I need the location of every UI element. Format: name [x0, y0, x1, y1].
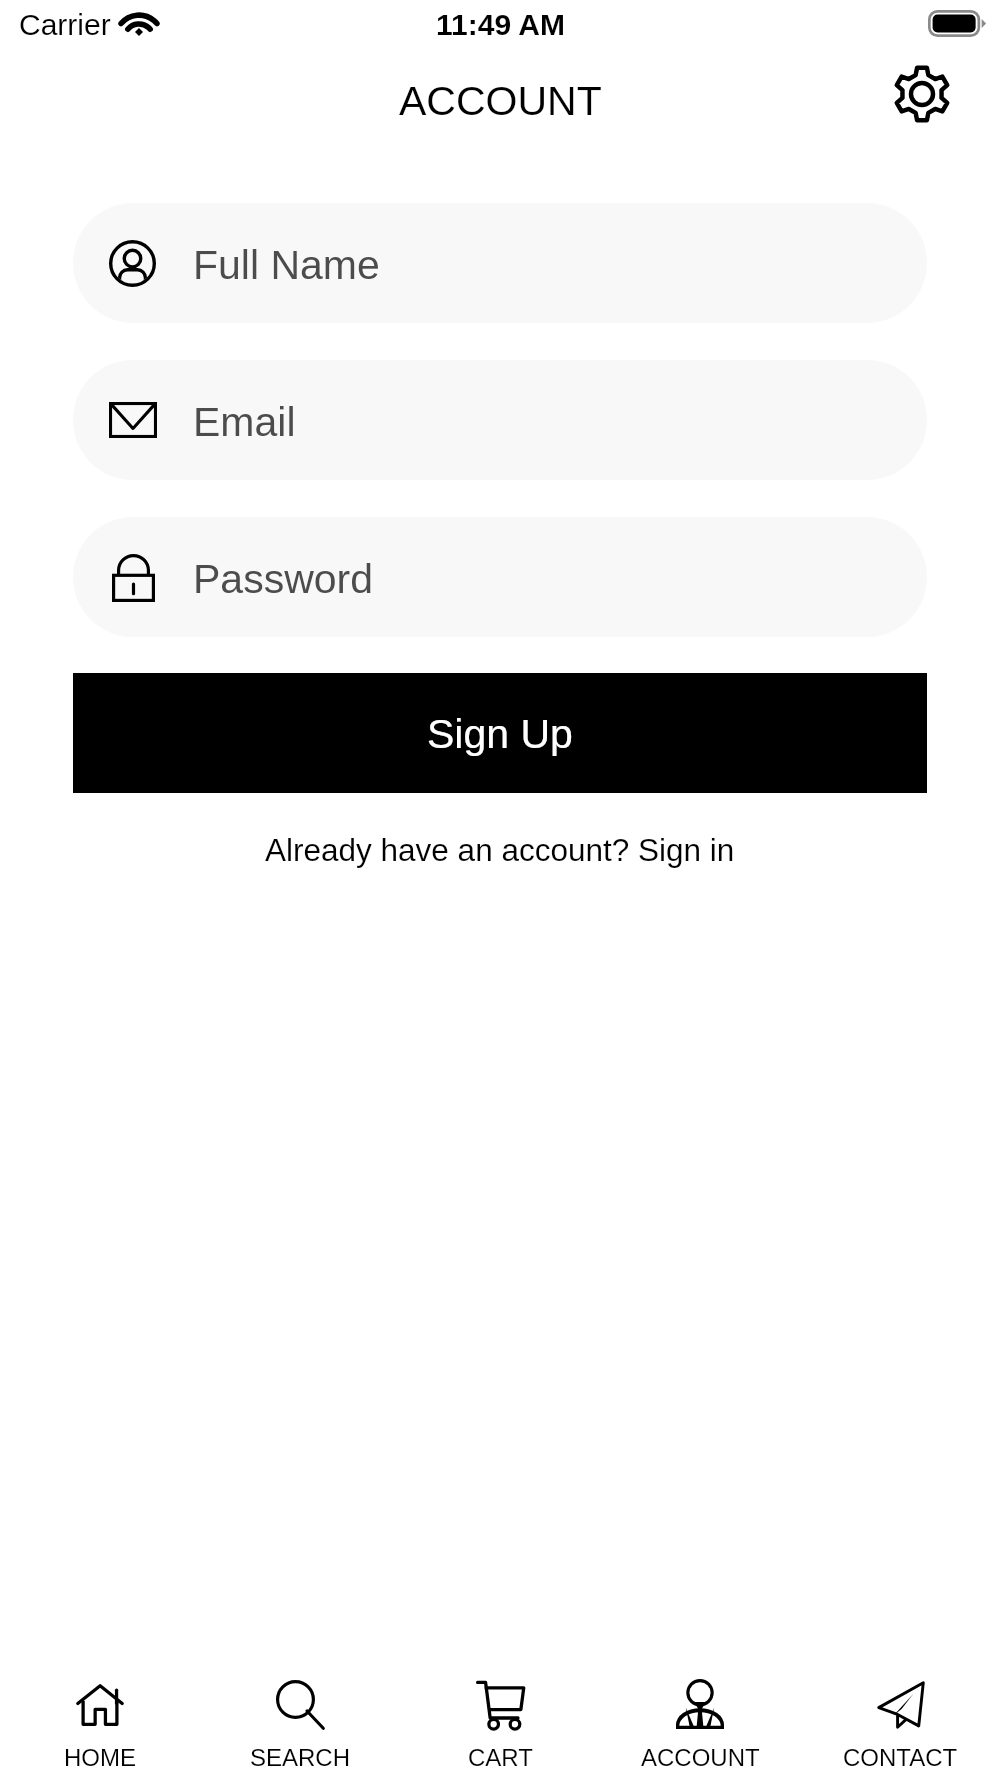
staticText: Password — [193, 556, 374, 602]
button[interactable]: CONTACT — [800, 1648, 1000, 1778]
button[interactable]: SEARCH — [200, 1648, 400, 1778]
button[interactable]: Settings — [888, 60, 956, 128]
staticText: SEARCH — [250, 1744, 351, 1771]
button[interactable]: Full Name — [73, 203, 927, 323]
button[interactable]: HOME — [0, 1648, 200, 1778]
button[interactable]: ACCOUNT — [600, 1648, 800, 1778]
button[interactable]: CART — [400, 1648, 600, 1778]
staticText: ACCOUNT — [399, 78, 602, 124]
staticText: ACCOUNT — [641, 1744, 760, 1771]
staticText: HOME — [64, 1744, 136, 1771]
staticText: Already have an account? Sign in — [265, 832, 735, 867]
staticText: Email — [193, 399, 296, 445]
staticText: CONTACT — [843, 1744, 958, 1771]
button[interactable]: Password — [73, 517, 927, 637]
staticText: 11:49 AM — [436, 8, 565, 42]
staticText: Sign Up — [427, 711, 573, 757]
staticText: Carrier — [19, 8, 111, 42]
button[interactable]: Already have an account? Sign in — [257, 824, 743, 875]
button[interactable]: Sign Up — [73, 673, 927, 793]
staticText: CART — [468, 1744, 533, 1771]
button[interactable]: Email — [73, 360, 927, 480]
staticText: Full Name — [193, 242, 380, 288]
